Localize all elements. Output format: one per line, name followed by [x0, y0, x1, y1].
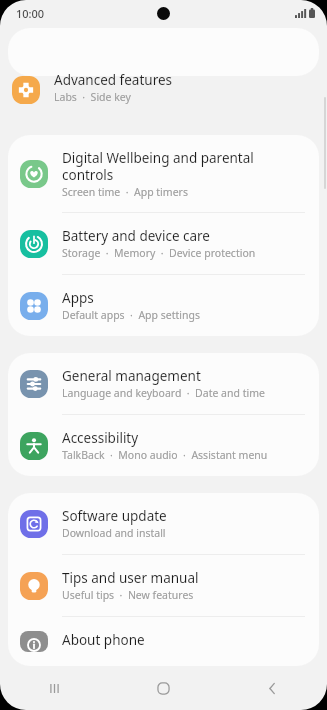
- staticText: Download and install: [62, 526, 166, 540]
- staticText: TalkBack · Mono audio · Assistant menu: [62, 448, 268, 462]
- staticText: Default apps · App settings: [62, 308, 200, 322]
- staticText: Tips and user manual: [62, 569, 199, 587]
- staticText: About phone: [62, 631, 145, 649]
- staticText: Labs · Side key: [54, 90, 131, 104]
- staticText: Apps: [62, 289, 94, 307]
- button[interactable]: Apps: [8, 275, 319, 336]
- staticText: Advanced features: [54, 71, 173, 89]
- button[interactable]: Software update: [8, 493, 319, 554]
- staticText: Screen time · App timers: [62, 185, 188, 199]
- button[interactable]: Home: [109, 666, 218, 710]
- button[interactable]: Digital Wellbeing and parental controls: [8, 135, 319, 212]
- staticText: Useful tips · New features: [62, 588, 194, 602]
- staticText: Storage · Memory · Device protection: [62, 246, 256, 260]
- button[interactable]: About phone: [8, 617, 319, 666]
- staticText: Accessibility: [62, 429, 139, 447]
- staticText: Language and keyboard · Date and time: [62, 386, 265, 400]
- staticText: Digital Wellbeing and parental controls: [62, 149, 254, 184]
- button[interactable]: Back: [218, 666, 327, 710]
- button[interactable]: Advanced features: [0, 70, 327, 118]
- staticText: 10:00: [16, 6, 45, 21]
- button[interactable]: Tips and user manual: [8, 555, 319, 616]
- button[interactable]: Recent apps: [0, 666, 109, 710]
- staticText: Software update: [62, 507, 167, 525]
- button[interactable]: General management: [8, 353, 319, 414]
- button[interactable]: Accessibility: [8, 415, 319, 476]
- staticText: General management: [62, 367, 201, 385]
- staticText: Battery and device care: [62, 227, 210, 245]
- button[interactable]: Battery and device care: [8, 213, 319, 274]
